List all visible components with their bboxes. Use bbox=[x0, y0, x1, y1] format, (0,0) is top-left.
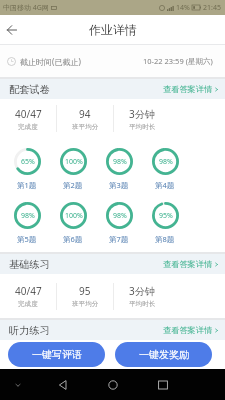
staticText: 第3题 bbox=[109, 180, 129, 190]
staticText: 班平均分 bbox=[72, 300, 99, 308]
button[interactable]: 98% bbox=[96, 148, 142, 190]
staticText: 10-22 23:59 (星期六) bbox=[143, 56, 213, 66]
button[interactable]: 65% bbox=[4, 148, 50, 190]
button[interactable]: 98% bbox=[96, 202, 142, 244]
staticText: 98% bbox=[21, 211, 35, 221]
button[interactable]: Recents bbox=[158, 369, 168, 400]
staticText: 一键写评语 bbox=[32, 348, 82, 361]
staticText: 95% bbox=[159, 211, 173, 221]
staticText: 98% bbox=[113, 211, 127, 221]
button[interactable]: 100% bbox=[50, 148, 96, 190]
staticText: 94 bbox=[79, 107, 91, 121]
staticText: 3分钟 bbox=[129, 107, 155, 121]
staticText: 98% bbox=[113, 157, 127, 167]
button[interactable]: Hide navigation bar bbox=[13, 369, 23, 400]
button[interactable]: Back bbox=[0, 15, 23, 44]
staticText: 平均时长 bbox=[129, 123, 156, 131]
staticText: 40/47 bbox=[15, 107, 42, 121]
staticText: 一键发奖励 bbox=[139, 348, 189, 361]
staticText: 14% bbox=[176, 3, 190, 13]
staticText: 完成度 bbox=[18, 123, 38, 131]
staticText: 第4题 bbox=[155, 180, 175, 190]
staticText: 40/47 bbox=[15, 284, 42, 298]
staticText: 查看答案详情 bbox=[163, 259, 213, 269]
staticText: 作业详情 bbox=[89, 22, 137, 37]
staticText: 听力练习 bbox=[9, 324, 50, 337]
button[interactable]: 一键写评语 bbox=[8, 342, 105, 367]
staticText: 65% bbox=[21, 157, 35, 167]
staticText: 基础练习 bbox=[9, 258, 50, 271]
staticText: 第2题 bbox=[63, 180, 83, 190]
button[interactable]: Home bbox=[108, 369, 118, 400]
button[interactable]: 95% bbox=[142, 202, 188, 244]
staticText: 98% bbox=[159, 157, 173, 167]
staticText: 3分钟 bbox=[129, 284, 155, 298]
button[interactable]: 98% bbox=[142, 148, 188, 190]
staticText: 第8题 bbox=[155, 234, 175, 244]
staticText: 100% bbox=[65, 157, 83, 167]
staticText: 100% bbox=[65, 211, 83, 221]
staticText: 班平均分 bbox=[72, 123, 99, 131]
staticText: 第7题 bbox=[109, 234, 129, 244]
staticText: 第6题 bbox=[63, 234, 83, 244]
button[interactable]: 一键发奖励 bbox=[115, 342, 212, 367]
button[interactable]: 查看答案详情 bbox=[162, 81, 220, 97]
button[interactable]: 查看答案详情 bbox=[162, 256, 220, 272]
staticText: 完成度 bbox=[18, 300, 38, 308]
staticText: 第1题 bbox=[17, 180, 37, 190]
button[interactable]: 100% bbox=[50, 202, 96, 244]
button[interactable]: 查看答案详情 bbox=[162, 322, 220, 338]
staticText: 中国移动 4G网 bbox=[3, 3, 49, 13]
staticText: 平均时长 bbox=[129, 300, 156, 308]
staticText: 查看答案详情 bbox=[163, 84, 213, 94]
staticText: 第5题 bbox=[17, 234, 37, 244]
button[interactable]: 98% bbox=[4, 202, 50, 244]
staticText: 查看答案详情 bbox=[163, 325, 213, 335]
staticText: 截止时间(已截止) bbox=[20, 56, 81, 67]
staticText: 21:45 bbox=[203, 3, 221, 13]
staticText: 配套试卷 bbox=[9, 83, 50, 96]
staticText: 95 bbox=[79, 284, 91, 298]
button[interactable]: Back bbox=[58, 369, 68, 400]
